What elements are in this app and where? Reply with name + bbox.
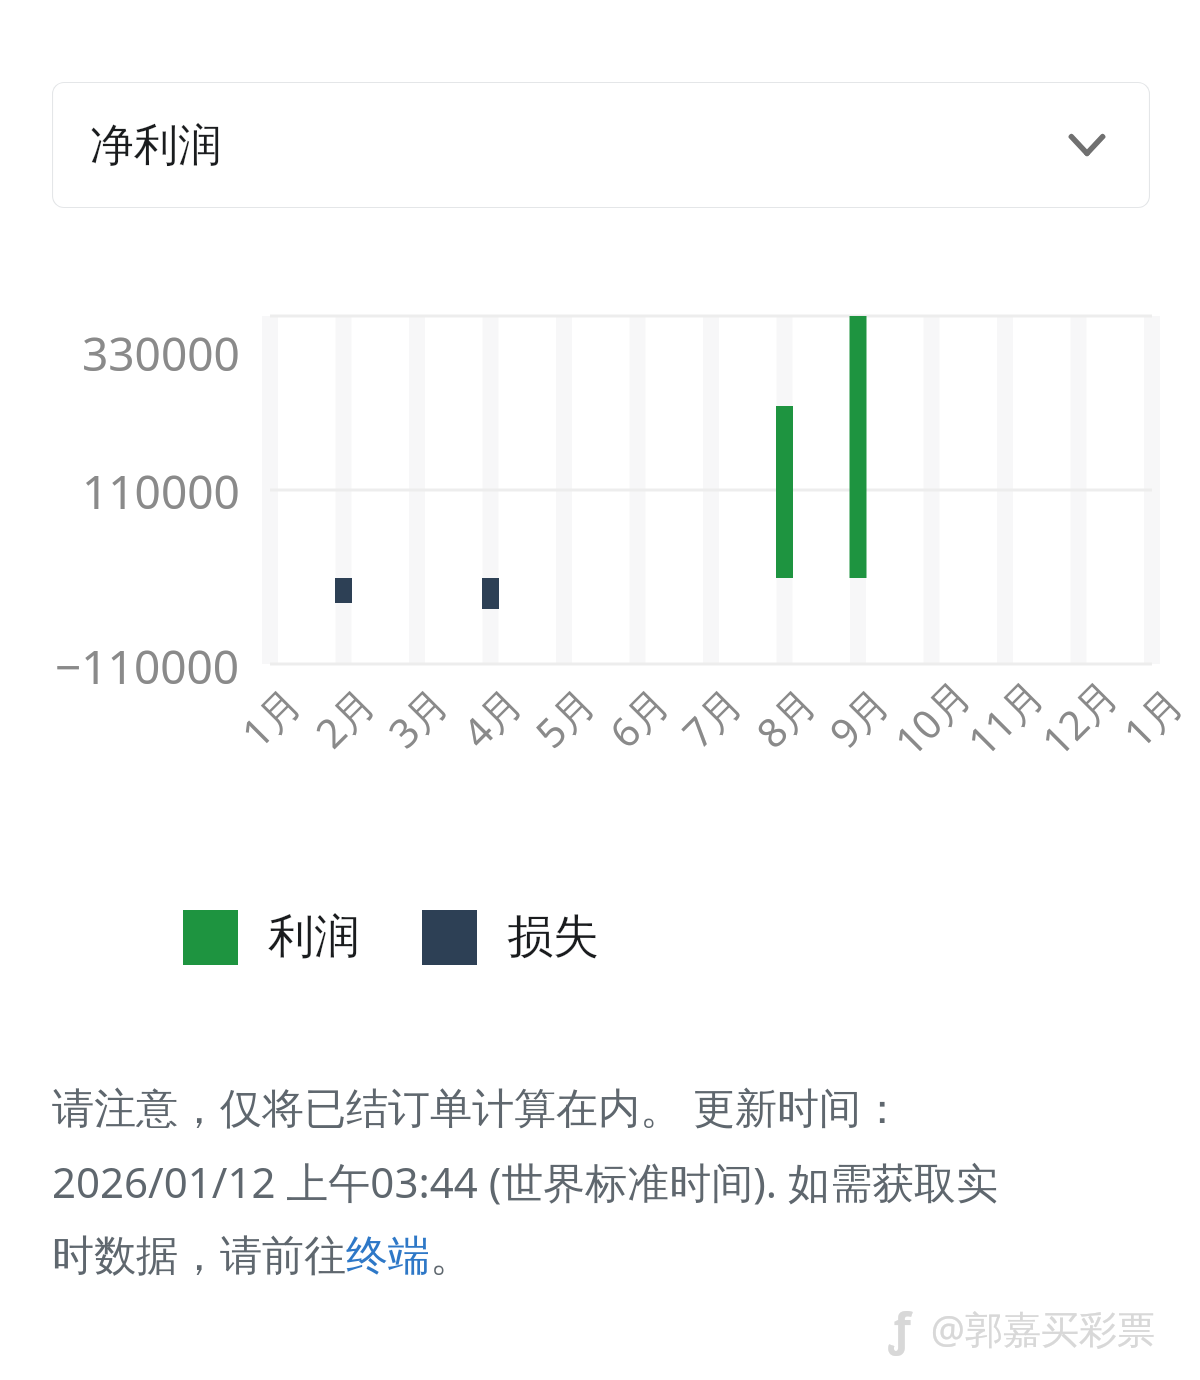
staticText: @郭嘉买彩票 [911,1302,1155,1354]
staticText: ƒ [888,1298,911,1358]
staticText: 5月 [523,676,606,759]
staticText: 6月 [597,676,680,759]
staticText: 8月 [744,676,827,759]
staticText: 4月 [450,676,533,759]
button[interactable]: 净利润 [52,82,1150,208]
staticText: 330000 [82,322,240,382]
staticText: 12月 [1029,668,1129,767]
staticText: 1月 [229,676,312,759]
staticText: 11月 [955,668,1055,767]
staticText: 1月 [1111,676,1194,759]
staticText: 损失 [507,908,599,966]
staticText: 2月 [303,676,386,759]
staticText: 3月 [376,676,459,759]
staticText: 净利润 [90,118,222,173]
other: Expand metric selector [1064,122,1110,168]
staticText: 7月 [670,676,753,759]
staticText: 110000 [82,460,240,520]
staticText: −110000 [55,635,240,695]
staticText: 10月 [882,668,982,767]
staticText: 9月 [817,676,900,759]
staticText: 请注意，仅将已结订单计算在内。 更新时间： 2026/01/12 上午03:44… [52,1078,999,1282]
staticText: 利润 [268,908,360,966]
